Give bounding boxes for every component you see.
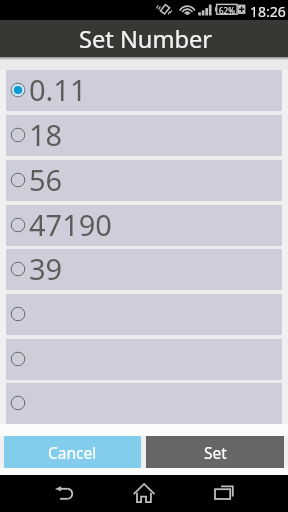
staticText: Set	[204, 442, 227, 463]
staticText: 18:26	[250, 2, 286, 21]
staticText: Cancel	[48, 442, 97, 463]
button[interactable]: 0.11	[6, 70, 282, 111]
staticText: 62%	[219, 5, 235, 16]
button[interactable]: 18	[6, 115, 282, 156]
staticText: 56	[29, 160, 63, 199]
button[interactable]: 39	[6, 249, 282, 290]
staticText: 0.11	[29, 70, 87, 109]
button[interactable]: Recent apps	[194, 475, 254, 512]
staticText: Set Number	[79, 23, 213, 55]
button[interactable]: Back	[34, 475, 94, 512]
staticText: 39	[29, 249, 63, 288]
button[interactable]: Cancel	[4, 436, 141, 468]
button[interactable]: Set	[146, 436, 284, 468]
button[interactable]	[6, 339, 282, 380]
button[interactable]	[6, 383, 282, 424]
button[interactable]: 47190	[6, 205, 282, 246]
button[interactable]: 56	[6, 160, 282, 201]
button[interactable]	[6, 294, 282, 335]
staticText: 18	[29, 115, 63, 154]
staticText: 47190	[29, 205, 112, 244]
button[interactable]: Home	[114, 475, 174, 512]
